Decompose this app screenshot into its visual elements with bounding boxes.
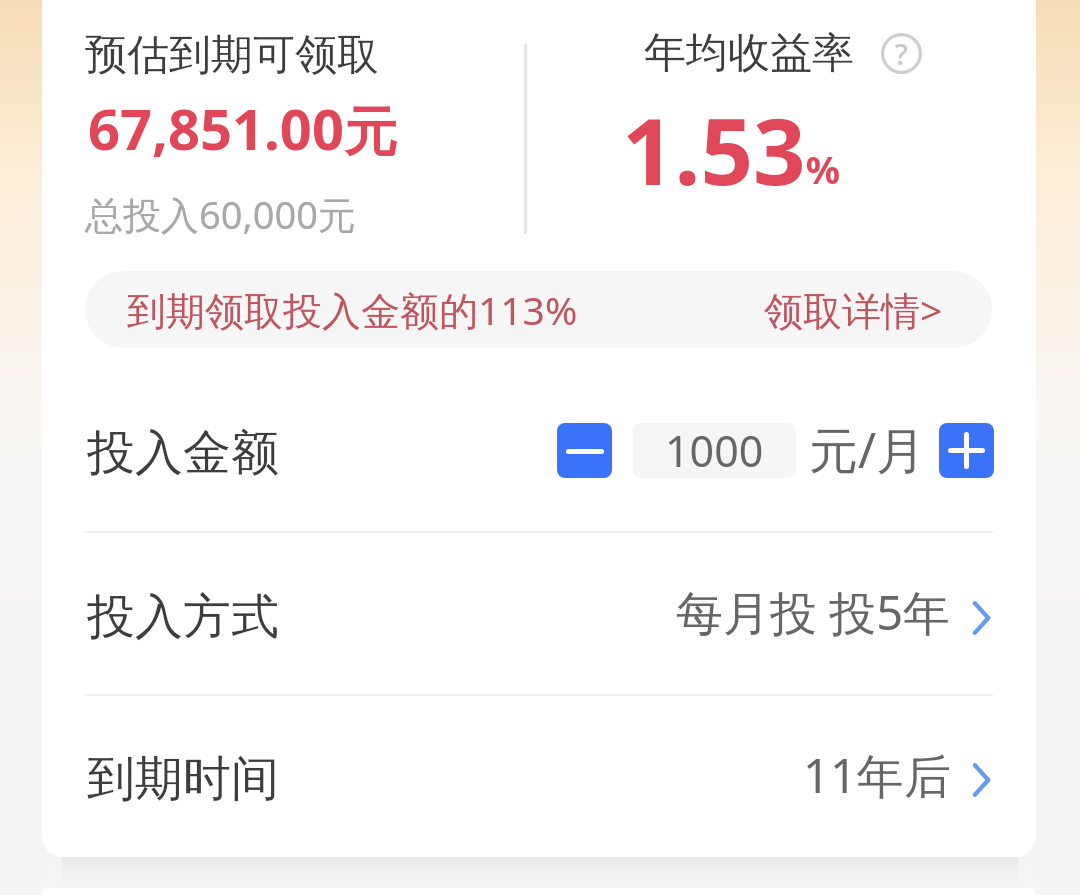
staticText: 年均收益率: [644, 27, 854, 80]
staticText: ?: [895, 35, 908, 73]
staticText: 到期领取投入金额的113%: [127, 283, 578, 336]
button[interactable]: 到期领取投入金额的113%: [85, 271, 992, 348]
button[interactable]: 投入方式: [87, 535, 994, 698]
staticText: 总投入60,000元: [85, 188, 356, 240]
button[interactable]: 1000: [633, 423, 796, 478]
button[interactable]: 增加投入金额: [939, 423, 994, 478]
button[interactable]: 减少投入金额: [557, 423, 612, 478]
staticText: 到期时间: [87, 749, 279, 809]
staticText: 1000: [665, 423, 764, 476]
staticText: 1.53%: [622, 87, 841, 212]
staticText: 投入方式: [87, 587, 279, 647]
staticText: 领取详情>: [764, 283, 943, 336]
staticText: 投入金额: [87, 423, 279, 483]
staticText: 预估到期可领取: [85, 29, 379, 82]
staticText: 67,851.00元: [88, 90, 397, 166]
staticText: 元/月: [809, 416, 926, 483]
button[interactable]: 到期时间: [87, 697, 994, 858]
staticText: 11年后: [803, 743, 951, 807]
button[interactable]: 收益率说明: [881, 33, 922, 74]
staticText: 每月投 投5年: [676, 580, 951, 644]
